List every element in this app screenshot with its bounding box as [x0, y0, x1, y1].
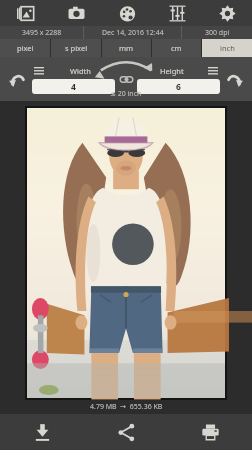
- staticText: inch: [220, 43, 235, 53]
- staticText: ≤ 20 inch: [110, 89, 142, 99]
- button[interactable]: mm: [102, 39, 151, 57]
- staticText: Width: [70, 66, 91, 76]
- button[interactable]: Camera: [51, 0, 102, 26]
- staticText: 6: [176, 81, 181, 93]
- button[interactable]: Gallery: [0, 0, 51, 26]
- button[interactable]: Share: [84, 414, 168, 450]
- staticText: cm: [171, 43, 182, 53]
- staticText: s pixel: [65, 43, 88, 53]
- button[interactable]: s pixel: [51, 39, 101, 57]
- staticText: 4: [71, 81, 76, 93]
- staticText: Dec 14, 2016 12:44: [102, 28, 164, 38]
- button[interactable]: Undo: [0, 57, 34, 101]
- staticText: mm: [119, 43, 134, 53]
- button[interactable]: Width presets: [32, 64, 46, 78]
- staticText: 4.79 MB → 655.36 KB: [90, 402, 163, 412]
- button[interactable]: Save: [0, 414, 84, 450]
- button[interactable]: Print: [168, 414, 252, 450]
- button[interactable]: Palette: [102, 0, 152, 26]
- button[interactable]: Adjust: [152, 0, 202, 26]
- staticText: 300 dpi: [205, 28, 230, 38]
- button[interactable]: 6: [137, 79, 220, 94]
- button[interactable]: Height presets: [206, 64, 220, 78]
- button[interactable]: pixel: [0, 39, 50, 57]
- button[interactable]: inch: [202, 39, 252, 57]
- button[interactable]: Redo: [218, 57, 252, 101]
- button[interactable]: Settings: [202, 0, 252, 26]
- button[interactable]: Link aspect ratio: [115, 57, 137, 101]
- staticText: Height: [160, 66, 184, 76]
- button[interactable]: 4: [32, 79, 115, 94]
- staticText: 3495 x 2288: [22, 28, 62, 38]
- staticText: pixel: [17, 43, 34, 53]
- button[interactable]: cm: [152, 39, 201, 57]
